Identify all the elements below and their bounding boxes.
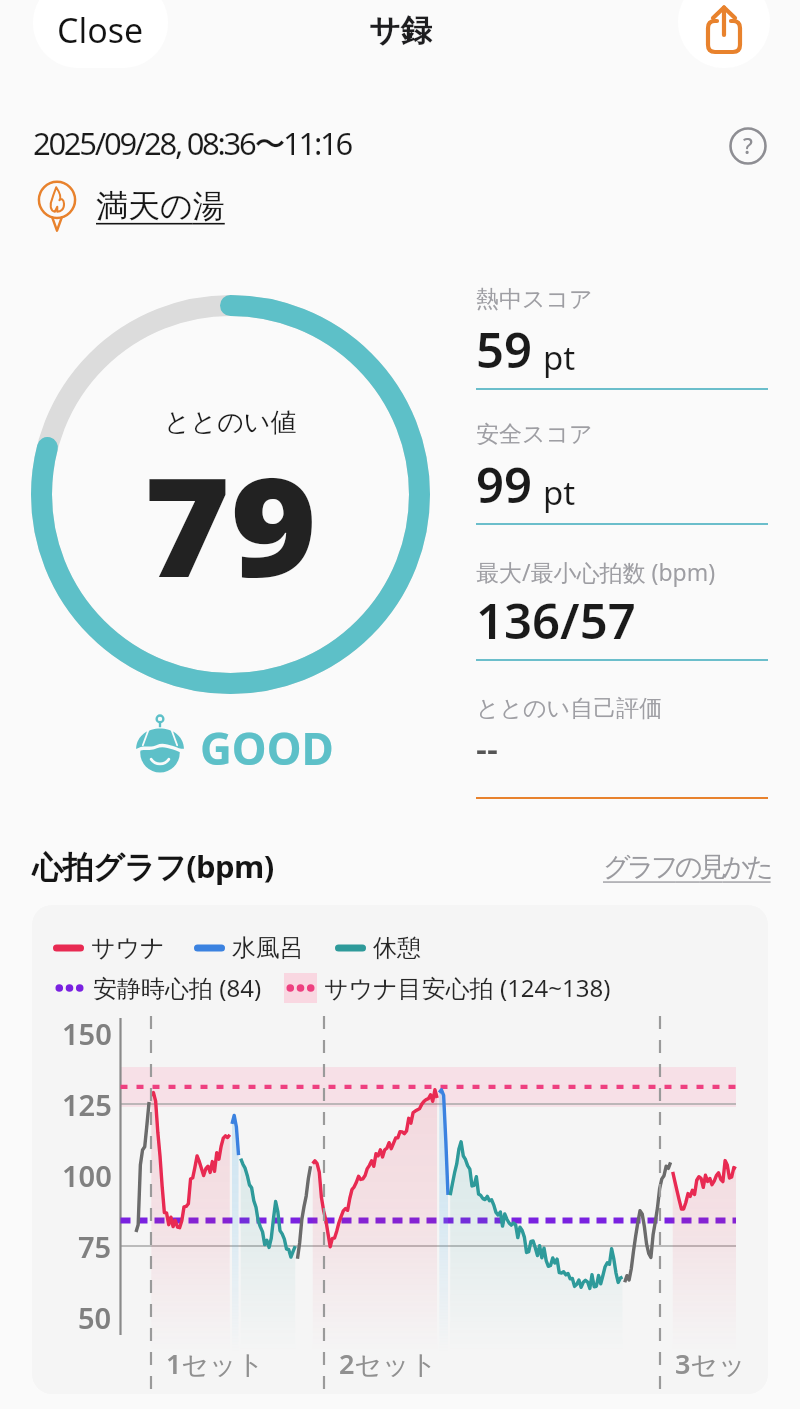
staticText: 熱中スコア [476,285,593,314]
staticText: ととのい値 [164,406,297,439]
button[interactable]: Share [678,0,770,68]
staticText: 心拍グラフ(bpm) [32,845,274,887]
button[interactable]: Close [33,0,168,68]
button[interactable]: Help [728,126,768,166]
button[interactable]: グラフの見かた [603,850,771,884]
staticText: GOOD [200,718,334,778]
staticText: pt [543,335,576,380]
staticText: 50 [78,1298,112,1337]
staticText: 79 [144,430,317,618]
staticText: 75 [78,1227,112,1266]
staticText: 99 [476,451,533,518]
staticText: 125 [62,1085,112,1124]
staticText: 150 [62,1014,112,1053]
staticText: 休憩 [373,933,421,963]
staticText: 136/57 [476,587,636,654]
staticText: 3セッ [675,1345,746,1382]
staticText: 最大/最小心拍数 (bpm) [476,556,716,587]
staticText: 2セット [339,1345,438,1382]
staticText: 安全スコア [476,420,593,449]
staticText: サ録 [369,11,432,50]
staticText: 100 [62,1156,112,1195]
staticText: ととのい自己評価 [476,694,663,723]
staticText: 満天の湯 [96,186,225,226]
staticText: 水風呂 [232,933,304,963]
staticText: ? [743,130,753,160]
staticText: Close [57,7,144,53]
staticText: 1セット [166,1345,265,1382]
staticText: サウナ目安心拍 (124~138) [324,971,611,1004]
staticText: 安静時心拍 (84) [93,971,262,1004]
staticText: -- [476,725,498,771]
button[interactable]: 満天の湯 [30,178,225,232]
staticText: pt [543,470,576,515]
staticText: グラフの見かた [603,850,771,884]
staticText: 59 [476,316,533,383]
staticText: サウナ [91,933,165,963]
staticText: 2025/09/28, 08:36〜11:16 [33,122,351,164]
